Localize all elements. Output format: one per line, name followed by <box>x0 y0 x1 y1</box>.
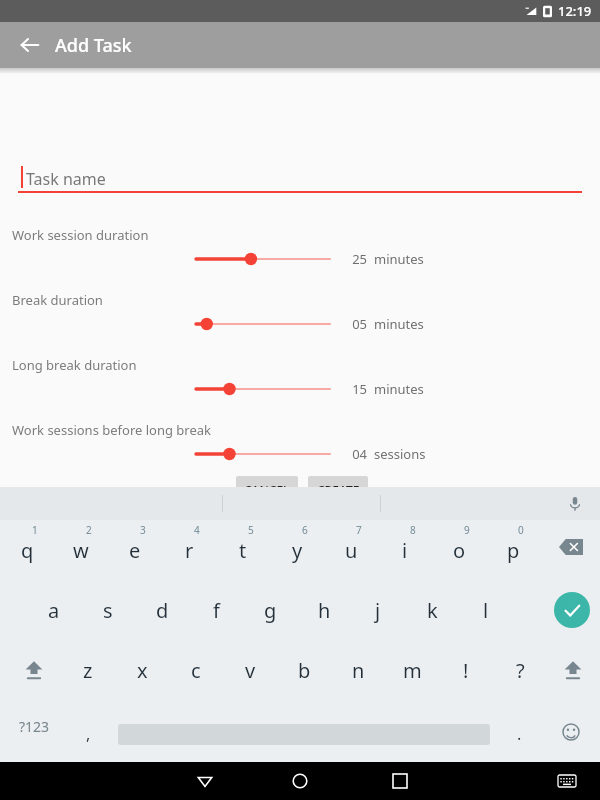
button[interactable]: v <box>223 646 277 694</box>
staticText: a <box>48 597 60 624</box>
button[interactable]: u <box>324 526 378 574</box>
staticText: Work session duration <box>12 226 149 244</box>
staticText: sessions <box>374 445 426 463</box>
button[interactable] <box>190 311 340 337</box>
staticText: q <box>21 537 34 564</box>
staticText: Add Task <box>55 33 132 58</box>
staticText: minutes <box>374 380 424 398</box>
button[interactable]: b <box>277 646 331 694</box>
staticText: ! <box>463 657 469 684</box>
button[interactable]: g <box>243 586 297 634</box>
button[interactable]: Hide keyboard <box>550 773 584 789</box>
button[interactable]: l <box>459 586 513 634</box>
button[interactable]: z <box>61 646 115 694</box>
staticText: CREATE <box>317 482 360 498</box>
staticText: f <box>213 597 220 624</box>
button[interactable]: . <box>492 710 546 758</box>
staticText: 7 <box>356 523 362 537</box>
button[interactable]: i <box>378 526 432 574</box>
staticText: z <box>83 657 93 684</box>
button[interactable]: c <box>169 646 223 694</box>
button[interactable]: x <box>115 646 169 694</box>
button[interactable]: t <box>216 526 270 574</box>
button[interactable]: ? <box>493 646 547 694</box>
button[interactable] <box>190 376 340 402</box>
staticText: minutes <box>374 250 424 268</box>
staticText: Break duration <box>12 291 103 309</box>
staticText: 6 <box>302 523 308 537</box>
staticText: 8 <box>410 523 416 537</box>
button[interactable]: a <box>27 586 81 634</box>
staticText: minutes <box>374 315 424 333</box>
button[interactable]: m <box>385 646 439 694</box>
staticText: ? <box>516 657 525 684</box>
staticText: c <box>191 657 201 684</box>
button[interactable]: r <box>162 526 216 574</box>
staticText: Work sessions before long break <box>12 421 212 439</box>
staticText: r <box>185 537 194 564</box>
button[interactable]: n <box>331 646 385 694</box>
staticText: , <box>86 723 91 745</box>
staticText: 12:19 <box>558 2 592 20</box>
button[interactable]: f <box>189 586 243 634</box>
button[interactable]: y <box>270 526 324 574</box>
button[interactable]: h <box>297 586 351 634</box>
button[interactable]: Voice input <box>560 489 590 519</box>
staticText: s <box>103 597 113 624</box>
button[interactable]: s <box>81 586 135 634</box>
button[interactable]: CREATE <box>308 476 368 504</box>
staticText: y <box>292 537 303 564</box>
staticText: n <box>352 657 365 684</box>
button[interactable]: j <box>351 586 405 634</box>
button[interactable]: Shift right <box>546 646 600 694</box>
button[interactable]: Home <box>280 771 320 791</box>
button[interactable]: p <box>486 526 540 574</box>
button[interactable]: , <box>61 710 115 758</box>
staticText: v <box>245 657 256 684</box>
staticText: k <box>427 597 438 624</box>
staticText: h <box>318 597 331 624</box>
button[interactable] <box>190 441 340 467</box>
button[interactable]: Shift left <box>7 646 61 694</box>
staticText: e <box>129 537 141 564</box>
button[interactable]: Recents <box>380 771 420 791</box>
staticText: Task name <box>26 168 106 190</box>
staticText: o <box>453 537 466 564</box>
button[interactable]: Emoji <box>553 714 589 750</box>
button[interactable]: Backspace <box>551 533 591 561</box>
staticText: 4 <box>194 523 200 537</box>
staticText: g <box>264 597 277 624</box>
button[interactable]: q <box>0 526 54 574</box>
staticText: u <box>345 537 358 564</box>
staticText: w <box>73 537 89 564</box>
staticText: m <box>403 657 422 684</box>
staticText: 15 <box>345 380 367 398</box>
button[interactable]: k <box>405 586 459 634</box>
button[interactable]: d <box>135 586 189 634</box>
button[interactable]: ! <box>439 646 493 694</box>
staticText: d <box>156 597 169 624</box>
staticText: l <box>483 597 489 624</box>
staticText: . <box>517 723 522 745</box>
staticText: i <box>402 537 408 564</box>
button[interactable]: ?123 <box>4 708 64 744</box>
staticText: 2 <box>86 523 92 537</box>
button[interactable] <box>190 246 340 272</box>
staticText: b <box>298 657 311 684</box>
button[interactable]: w <box>54 526 108 574</box>
button[interactable]: Enter <box>554 592 590 628</box>
button[interactable]: e <box>108 526 162 574</box>
staticText: 1 <box>32 523 38 537</box>
staticText: 25 <box>345 250 367 268</box>
staticText: p <box>507 537 520 564</box>
staticText: x <box>137 657 148 684</box>
staticText: 0 <box>518 523 524 537</box>
staticText: 3 <box>140 523 146 537</box>
button[interactable]: CANCEL <box>236 476 298 504</box>
button[interactable]: o <box>432 526 486 574</box>
button[interactable]: Back <box>12 27 48 63</box>
staticText: 9 <box>464 523 470 537</box>
staticText: 5 <box>248 523 254 537</box>
button[interactable]: Back <box>185 771 225 791</box>
